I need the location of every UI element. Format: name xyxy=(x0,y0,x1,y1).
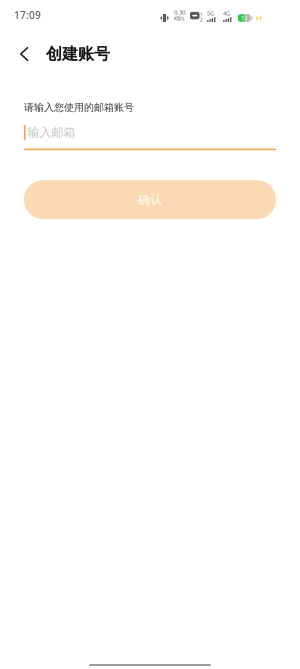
staticText: 输入邮箱 xyxy=(28,125,76,140)
staticText: 4G xyxy=(223,10,230,17)
staticText: KB/s xyxy=(174,15,184,22)
staticText: 53 xyxy=(241,14,247,22)
button[interactable]: 确认 xyxy=(24,180,276,219)
staticText: 2 xyxy=(200,17,203,23)
staticText: 5G xyxy=(207,10,214,17)
staticText: 确认 xyxy=(138,192,162,207)
staticText: 17:09 xyxy=(14,8,41,22)
staticText: 0.30 xyxy=(174,8,185,16)
staticText: 1 xyxy=(200,12,203,18)
staticText: 创建账号 xyxy=(46,44,110,64)
button[interactable]: Back xyxy=(0,39,46,69)
staticText: 请输入您使用的邮箱账号 xyxy=(24,101,134,114)
